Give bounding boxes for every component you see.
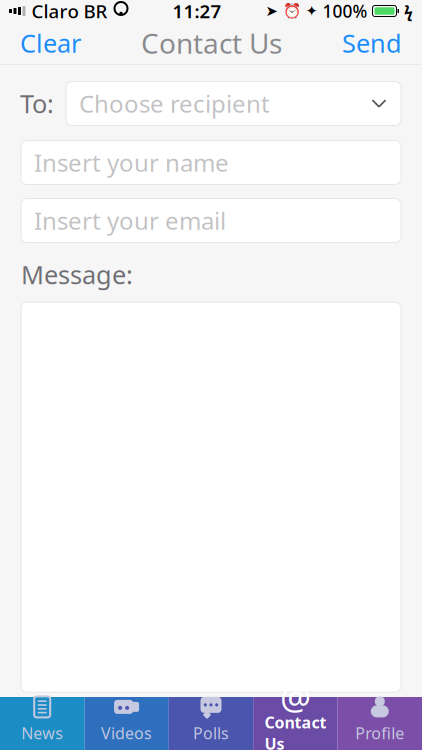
staticText: @ — [280, 673, 311, 719]
staticText: Choose recipient — [79, 88, 270, 119]
staticText: Claro BR — [31, 0, 107, 23]
button[interactable]: Insert your email — [21, 198, 401, 242]
staticText: ➤ — [265, 3, 277, 19]
staticText: ϟ — [404, 0, 413, 22]
staticText: ✦ — [305, 3, 317, 19]
staticText: Message: — [21, 257, 133, 291]
button[interactable]: Send — [338, 20, 406, 66]
staticText: 11:27 — [172, 0, 221, 23]
staticText: Insert your email — [34, 205, 226, 236]
staticText: Contact Us — [141, 24, 282, 62]
button[interactable]: Insert your name — [21, 140, 401, 184]
button[interactable]: @ — [253, 697, 338, 750]
staticText: Videos — [101, 722, 152, 744]
staticText: 100% — [322, 0, 367, 22]
staticText: Contact Us — [264, 712, 326, 750]
staticText: Clear — [20, 26, 81, 60]
staticText: Send — [342, 26, 402, 60]
button[interactable]: Profile — [338, 697, 422, 750]
staticText: To: — [20, 87, 54, 120]
staticText: News — [21, 722, 63, 744]
button[interactable]: Clear — [16, 20, 85, 66]
staticText: Insert your name — [34, 147, 229, 178]
button[interactable]: Videos — [84, 697, 169, 750]
button[interactable]: Choose recipient — [66, 81, 401, 125]
button[interactable]: News — [0, 697, 84, 750]
staticText: Polls — [193, 722, 229, 744]
button[interactable]: Polls — [169, 697, 253, 750]
staticText: ⏰ — [282, 3, 300, 19]
staticText: Profile — [355, 722, 404, 744]
